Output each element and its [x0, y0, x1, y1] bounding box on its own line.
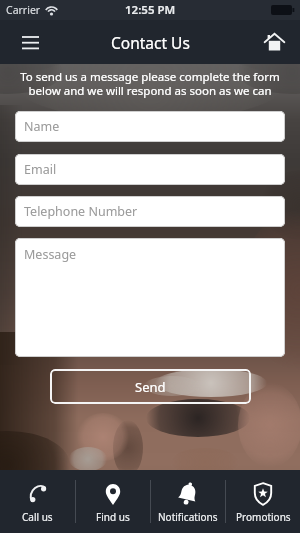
button[interactable]: Send	[50, 369, 251, 404]
button[interactable]: Notifications	[151, 470, 225, 533]
staticText: Send	[135, 378, 166, 396]
staticText: Contact Us	[111, 32, 190, 53]
staticText: 12:55 PM	[125, 2, 176, 18]
button[interactable]	[12, 24, 48, 60]
button[interactable]	[258, 26, 290, 58]
button[interactable]: Email	[15, 154, 285, 185]
staticText: Promotions	[236, 510, 291, 524]
staticText: Telephone Number	[24, 203, 138, 220]
button[interactable]: Telephone Number	[15, 196, 285, 227]
button[interactable]: Call us	[0, 470, 75, 533]
button[interactable]: Promotions	[226, 470, 300, 533]
staticText: Name	[24, 118, 60, 135]
staticText: Carrier	[6, 3, 41, 17]
staticText: To send us a message please complete the…	[0, 69, 300, 98]
staticText: Message	[24, 246, 77, 263]
staticText: Find us	[96, 510, 130, 524]
staticText: Notifications	[158, 510, 218, 524]
staticText: Email	[24, 161, 57, 178]
staticText: Call us	[22, 510, 53, 524]
button[interactable]: Name	[15, 111, 285, 142]
button[interactable]: Message	[15, 238, 285, 357]
button[interactable]: Find us	[76, 470, 150, 533]
